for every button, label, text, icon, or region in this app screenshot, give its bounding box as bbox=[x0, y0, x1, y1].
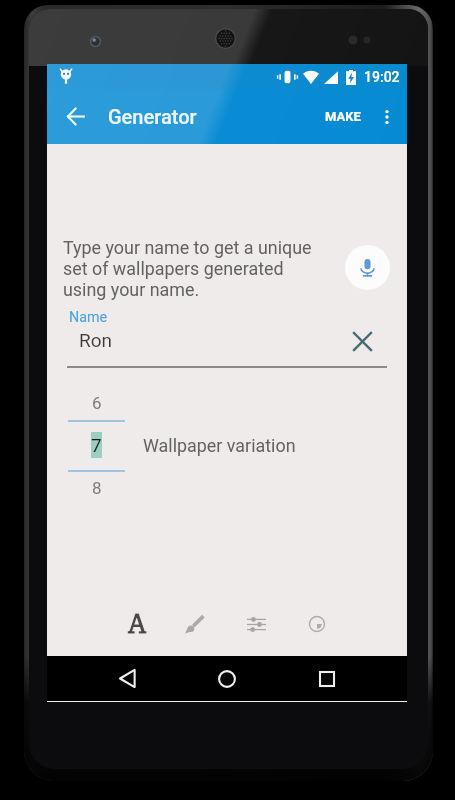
button[interactable]: Voice input bbox=[345, 245, 390, 290]
button[interactable]: More options bbox=[367, 89, 407, 144]
staticText: 7 bbox=[91, 434, 102, 456]
button[interactable]: MAKE bbox=[325, 89, 361, 144]
staticText: Ron bbox=[79, 329, 113, 351]
staticText: A bbox=[128, 609, 147, 639]
staticText: 6 bbox=[92, 393, 102, 413]
staticText: Name bbox=[69, 309, 108, 326]
staticText: 19:02 bbox=[364, 69, 400, 85]
button[interactable]: Adjust bbox=[236, 592, 276, 656]
button[interactable]: Wallpaper variation picker bbox=[68, 389, 125, 499]
button[interactable]: Clear text bbox=[347, 326, 377, 356]
button[interactable]: Home bbox=[203, 656, 251, 701]
staticText: MAKE bbox=[325, 109, 361, 124]
staticText: Type your name to get a unique set of wa… bbox=[63, 237, 312, 300]
button[interactable]: Brush bbox=[174, 592, 214, 656]
button[interactable]: Navigate up bbox=[52, 89, 100, 144]
button[interactable]: Font bbox=[117, 592, 157, 656]
button[interactable]: Recent apps bbox=[303, 656, 351, 701]
staticText: Wallpaper variation bbox=[143, 435, 296, 456]
button[interactable]: Back bbox=[103, 656, 151, 701]
staticText: Generator bbox=[108, 105, 197, 128]
button[interactable]: Brightness bbox=[297, 592, 337, 656]
staticText: 8 bbox=[92, 478, 102, 498]
